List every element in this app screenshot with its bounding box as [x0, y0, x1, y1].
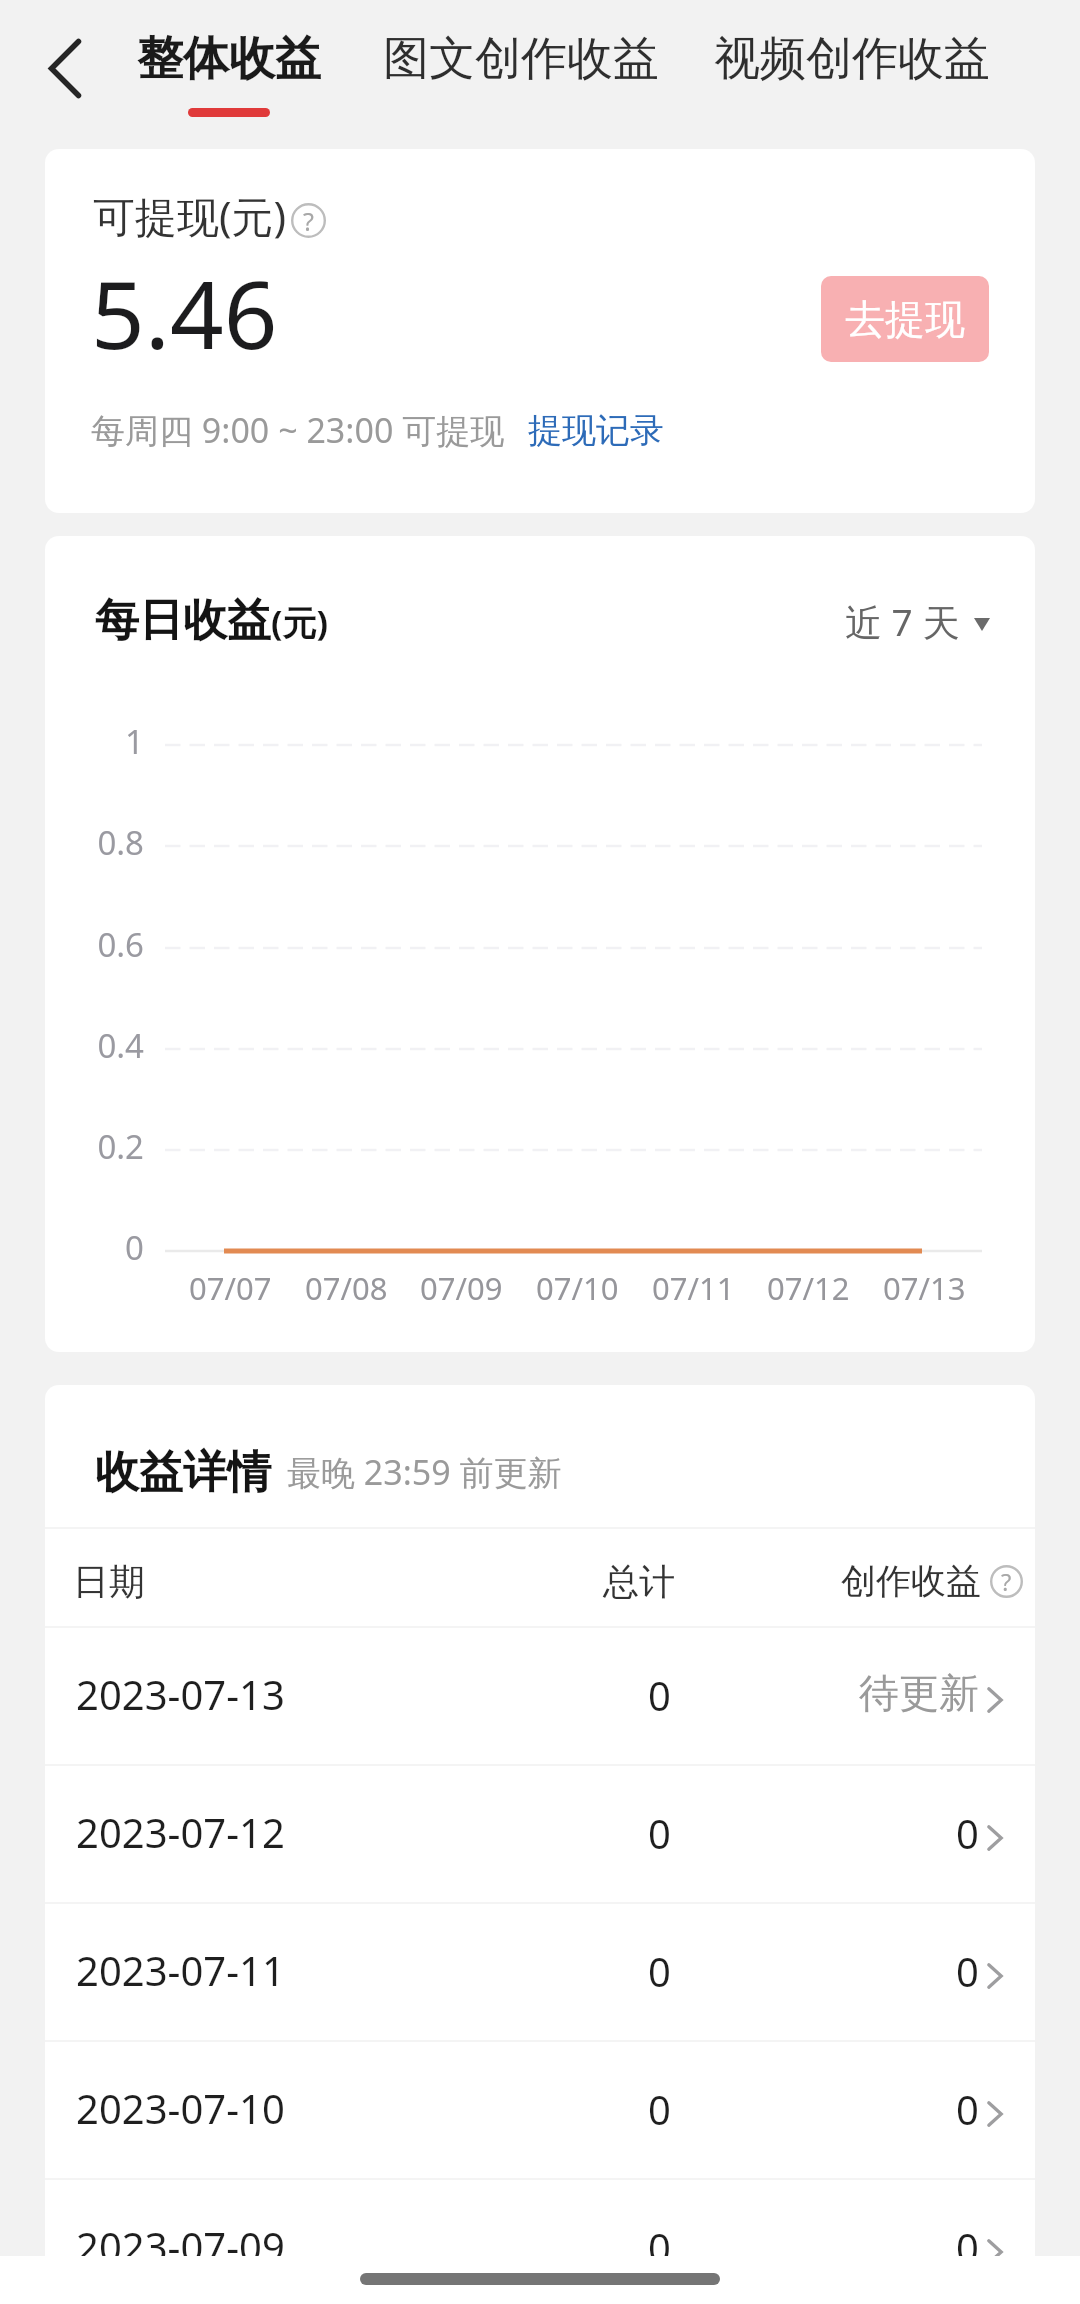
staticText: 0 [956, 2220, 979, 2256]
staticText: 2023-07-12 [76, 1805, 285, 1859]
button[interactable]: 图文创作收益 [383, 30, 659, 117]
staticText: 07/12 [767, 1267, 850, 1309]
staticText: 创作收益 [841, 1559, 981, 1603]
staticText: 收益详情 [95, 1445, 271, 1500]
staticText: 去提现 [845, 294, 965, 344]
staticText: 0 [648, 1668, 671, 1722]
button[interactable]: 2023-07-10 [45, 2042, 1035, 2178]
button[interactable]: Back [18, 23, 110, 115]
staticText: 最晚 23:59 前更新 [287, 1449, 562, 1495]
staticText: 2023-07-09 [76, 2219, 285, 2256]
staticText: 0 [956, 1806, 979, 1860]
staticText: 每周四 9:00 ~ 23:00 可提现 [91, 407, 505, 453]
button[interactable]: 2023-07-13 [45, 1628, 1035, 1764]
button[interactable]: 近 7 天 [845, 596, 990, 647]
button[interactable]: 去提现 [821, 276, 989, 362]
button[interactable]: Help about withdrawable balance [291, 203, 326, 238]
staticText: 待更新 [859, 1668, 979, 1718]
button[interactable]: 整体收益 [137, 30, 321, 117]
staticText: 0.8 [97, 820, 144, 865]
staticText: 2023-07-11 [76, 1943, 285, 1997]
staticText: 07/11 [652, 1267, 735, 1309]
staticText: 视频创作收益 [714, 30, 990, 88]
staticText: 1 [125, 719, 144, 764]
staticText: 总计 [603, 1559, 675, 1604]
staticText: 0 [648, 1806, 671, 1860]
staticText: 07/08 [305, 1267, 388, 1309]
staticText: 近 7 天 [845, 596, 960, 647]
staticText: 2023-07-13 [76, 1667, 285, 1721]
staticText: 07/13 [883, 1267, 966, 1309]
staticText: 0 [648, 1944, 671, 1998]
staticText: 日期 [73, 1559, 145, 1604]
staticText: 0 [125, 1225, 144, 1270]
staticText: 07/07 [189, 1267, 272, 1309]
staticText: 2023-07-10 [76, 2081, 285, 2135]
staticText: 整体收益 [137, 30, 321, 88]
staticText: 0.4 [97, 1023, 144, 1068]
staticText: 0 [648, 2220, 671, 2256]
staticText: 5.46 [91, 249, 278, 377]
staticText: 可提现(元) [93, 187, 287, 244]
button[interactable]: 提现记录 [528, 409, 664, 452]
staticText: 0 [648, 2082, 671, 2136]
staticText: ? [1001, 1566, 1012, 1598]
staticText: 07/09 [420, 1267, 503, 1309]
staticText: (元) [271, 599, 329, 645]
staticText: 07/10 [536, 1267, 619, 1309]
staticText: 图文创作收益 [383, 30, 659, 88]
staticText: 0 [956, 2082, 979, 2136]
button[interactable]: 视频创作收益 [714, 30, 990, 117]
staticText: ? [303, 204, 314, 238]
button[interactable]: Help about creator income [990, 1565, 1023, 1598]
button[interactable]: 2023-07-12 [45, 1766, 1035, 1902]
button[interactable]: 2023-07-11 [45, 1904, 1035, 2040]
staticText: 0.6 [97, 922, 144, 967]
staticText: 0 [956, 1944, 979, 1998]
button[interactable]: 2023-07-09 [45, 2180, 1035, 2256]
staticText: 0.2 [97, 1124, 144, 1169]
staticText: 每日收益 [95, 593, 271, 648]
